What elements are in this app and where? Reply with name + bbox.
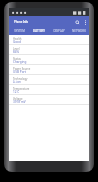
staticText: USB Port [13, 70, 26, 74]
button[interactable]: Health [9, 35, 89, 45]
button[interactable]: SYSTEM [9, 27, 29, 35]
staticText: BATTERY [33, 29, 45, 33]
staticText: 3918 mV [13, 100, 26, 104]
button[interactable]: DISPLAY [49, 27, 69, 35]
staticText: Power Source [13, 67, 31, 71]
button[interactable]: Temperature [9, 85, 89, 95]
staticText: Temperature [13, 87, 30, 91]
button[interactable]: More options [81, 18, 89, 26]
button[interactable]: Status [9, 55, 89, 65]
button[interactable]: Technology [9, 75, 89, 85]
button[interactable]: Power Source [9, 65, 89, 75]
staticText: 12 C [13, 90, 20, 94]
staticText: 84% [13, 50, 20, 54]
staticText: SYSTEM [14, 29, 25, 33]
staticText: Status [13, 57, 21, 61]
staticText: Health [13, 37, 22, 41]
button[interactable]: Level [9, 45, 89, 55]
staticText: Technology [13, 77, 28, 81]
staticText: Phone Info [14, 20, 29, 24]
staticText: Li-ion [13, 80, 21, 84]
button[interactable]: Search [73, 18, 81, 26]
staticText: Voltage [13, 97, 23, 101]
staticText: NETWORK [72, 29, 86, 33]
button[interactable]: Voltage [9, 95, 89, 105]
button[interactable]: NETWORK [69, 27, 89, 35]
staticText: Charging [13, 60, 27, 64]
staticText: DISPLAY [53, 29, 65, 33]
button[interactable]: BATTERY [29, 27, 49, 35]
staticText: Good [13, 40, 21, 44]
staticText: Level [13, 47, 20, 51]
